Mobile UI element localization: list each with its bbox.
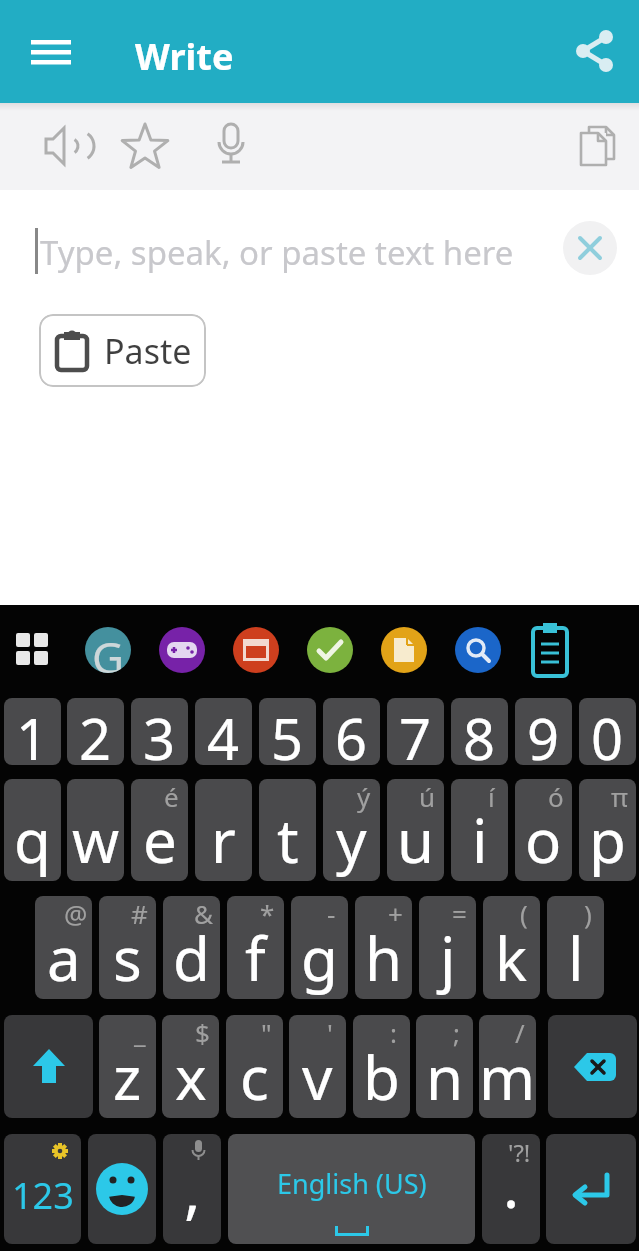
staticText: ; — [453, 1015, 460, 1050]
button[interactable]: G — [85, 627, 131, 673]
staticText: ) — [584, 896, 592, 931]
button[interactable]: j — [419, 896, 476, 999]
staticText: l — [568, 917, 584, 999]
button[interactable] — [381, 627, 427, 673]
staticText: $ — [195, 1015, 210, 1050]
staticText: x — [175, 1036, 207, 1118]
button[interactable] — [203, 118, 259, 174]
staticText: f — [245, 917, 266, 999]
button[interactable]: c — [226, 1015, 283, 1118]
staticText: ý — [357, 779, 371, 814]
staticText: 5 — [271, 700, 304, 765]
button[interactable]: z — [99, 1015, 156, 1118]
button[interactable]: 0 — [579, 698, 636, 765]
button[interactable]: u — [387, 779, 444, 881]
staticText: p — [589, 799, 626, 881]
button[interactable]: b — [353, 1015, 410, 1118]
button[interactable] — [563, 221, 617, 275]
button[interactable]: t — [259, 779, 316, 881]
button[interactable]: 2 — [67, 698, 124, 765]
button[interactable]: i — [451, 779, 508, 881]
staticText: = — [452, 896, 467, 931]
button[interactable] — [16, 633, 50, 667]
staticText: 1 — [16, 700, 49, 765]
button[interactable]: , — [163, 1134, 221, 1244]
staticText: 7 — [399, 700, 432, 765]
staticText: English (US) — [277, 1165, 427, 1202]
staticText: u — [397, 799, 435, 881]
button[interactable]: w — [67, 779, 124, 881]
staticText: í — [488, 779, 495, 814]
staticText: y — [336, 799, 367, 881]
button[interactable]: 5 — [259, 698, 316, 765]
button[interactable]: 3 — [131, 698, 188, 765]
button[interactable] — [34, 118, 90, 174]
staticText: ú — [419, 779, 436, 814]
button[interactable] — [568, 118, 624, 174]
button[interactable]: 123 — [4, 1134, 81, 1244]
button[interactable]: 7 — [387, 698, 444, 765]
button[interactable] — [307, 627, 353, 673]
staticText: π — [611, 779, 628, 814]
button[interactable]: f — [227, 896, 284, 999]
staticText: / — [515, 1015, 525, 1050]
button[interactable]: 9 — [515, 698, 572, 765]
button[interactable]: h — [355, 896, 412, 999]
staticText: 9 — [527, 700, 560, 765]
staticText: & — [194, 896, 214, 931]
button[interactable]: p — [579, 779, 636, 881]
button[interactable] — [117, 118, 173, 174]
button[interactable]: x — [162, 1015, 219, 1118]
button[interactable]: q — [4, 779, 61, 881]
button[interactable]: k — [483, 896, 540, 999]
staticText: + — [388, 896, 403, 931]
button[interactable]: o — [515, 779, 572, 881]
button[interactable]: v — [289, 1015, 346, 1118]
staticText: e — [143, 799, 177, 881]
staticText: 123 — [12, 1171, 74, 1220]
staticText: 2 — [79, 700, 112, 765]
button[interactable] — [548, 1015, 637, 1118]
button[interactable]: . — [482, 1134, 540, 1244]
button[interactable] — [529, 620, 571, 680]
button[interactable]: d — [163, 896, 220, 999]
staticText: . — [503, 1144, 520, 1226]
button[interactable] — [18, 30, 84, 76]
button[interactable]: Paste — [39, 314, 206, 387]
button[interactable]: 4 — [195, 698, 252, 765]
staticText: 8 — [463, 700, 496, 765]
staticText: 0 — [591, 700, 624, 765]
staticText: Type, speak, or paste text here — [40, 230, 514, 275]
staticText: G — [92, 627, 125, 673]
button[interactable]: s — [99, 896, 156, 999]
staticText: 3 — [143, 700, 176, 765]
button[interactable]: n — [416, 1015, 473, 1118]
staticText: w — [72, 799, 120, 881]
button[interactable] — [4, 1015, 93, 1118]
button[interactable]: English (US) — [228, 1134, 475, 1244]
staticText: m — [479, 1036, 536, 1118]
button[interactable]: r — [195, 779, 252, 881]
button[interactable] — [566, 22, 622, 78]
staticText: d — [173, 917, 210, 999]
button[interactable]: 8 — [451, 698, 508, 765]
button[interactable]: g — [291, 896, 348, 999]
staticText: h — [365, 917, 403, 999]
staticText: - — [327, 896, 336, 931]
button[interactable] — [546, 1134, 636, 1244]
button[interactable]: 6 — [323, 698, 380, 765]
button[interactable] — [233, 627, 279, 673]
button[interactable] — [88, 1134, 156, 1244]
staticText: q — [14, 799, 51, 881]
staticText: 6 — [335, 700, 368, 765]
button[interactable] — [159, 627, 205, 673]
button[interactable] — [455, 627, 501, 673]
button[interactable]: e — [131, 779, 188, 881]
button[interactable]: a — [35, 896, 92, 999]
staticText: " — [261, 1015, 272, 1050]
staticText: '?! — [508, 1136, 531, 1169]
button[interactable]: y — [323, 779, 380, 881]
button[interactable]: 1 — [4, 698, 61, 765]
button[interactable]: m — [479, 1015, 536, 1118]
button[interactable]: l — [547, 896, 604, 999]
